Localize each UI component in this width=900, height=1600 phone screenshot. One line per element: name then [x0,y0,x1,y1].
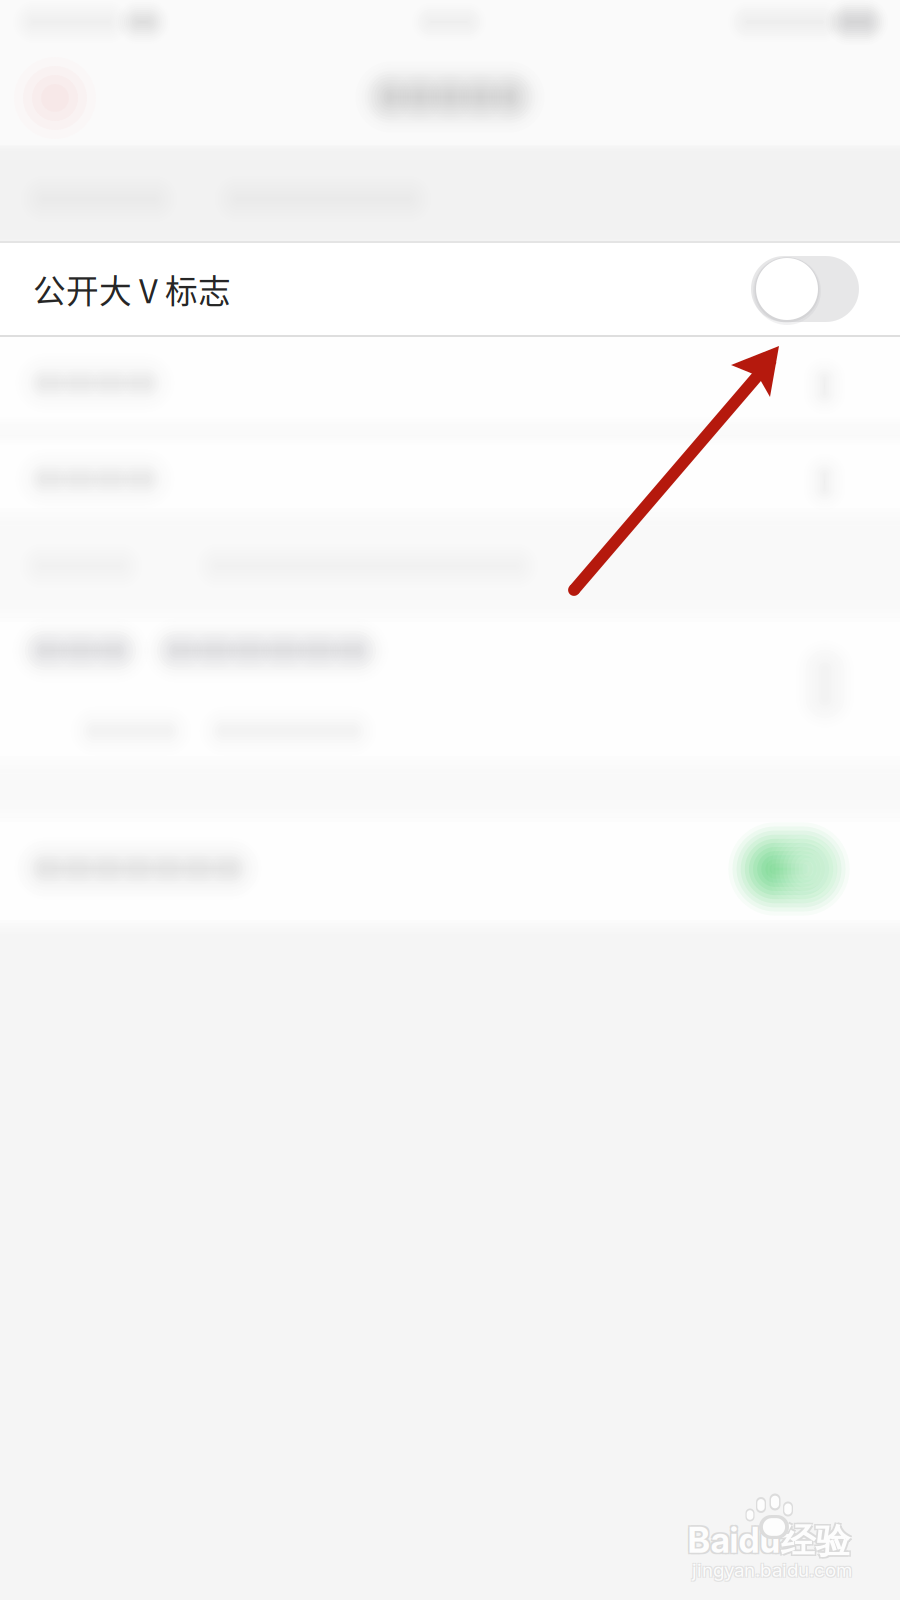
staticText: Baidu经验 [686,1518,849,1561]
staticText: jingyan.baidu.com [691,1560,851,1582]
staticText: Baidu经验 [687,1519,850,1563]
staticText: 公开大 V 标志 [33,265,231,313]
staticText: jingyan.baidu.com [693,1558,853,1580]
staticText: jingyan.baidu.com [691,1558,851,1580]
staticText: jingyan.baidu.com [692,1559,852,1581]
button[interactable]: 公开大 V 标志 [0,241,900,337]
staticText: Baidu经验 [689,1521,852,1564]
staticText: Baidu经验 [689,1518,852,1561]
staticText: jingyan.baidu.com [693,1560,853,1582]
staticText: Baidu经验 [686,1521,849,1564]
